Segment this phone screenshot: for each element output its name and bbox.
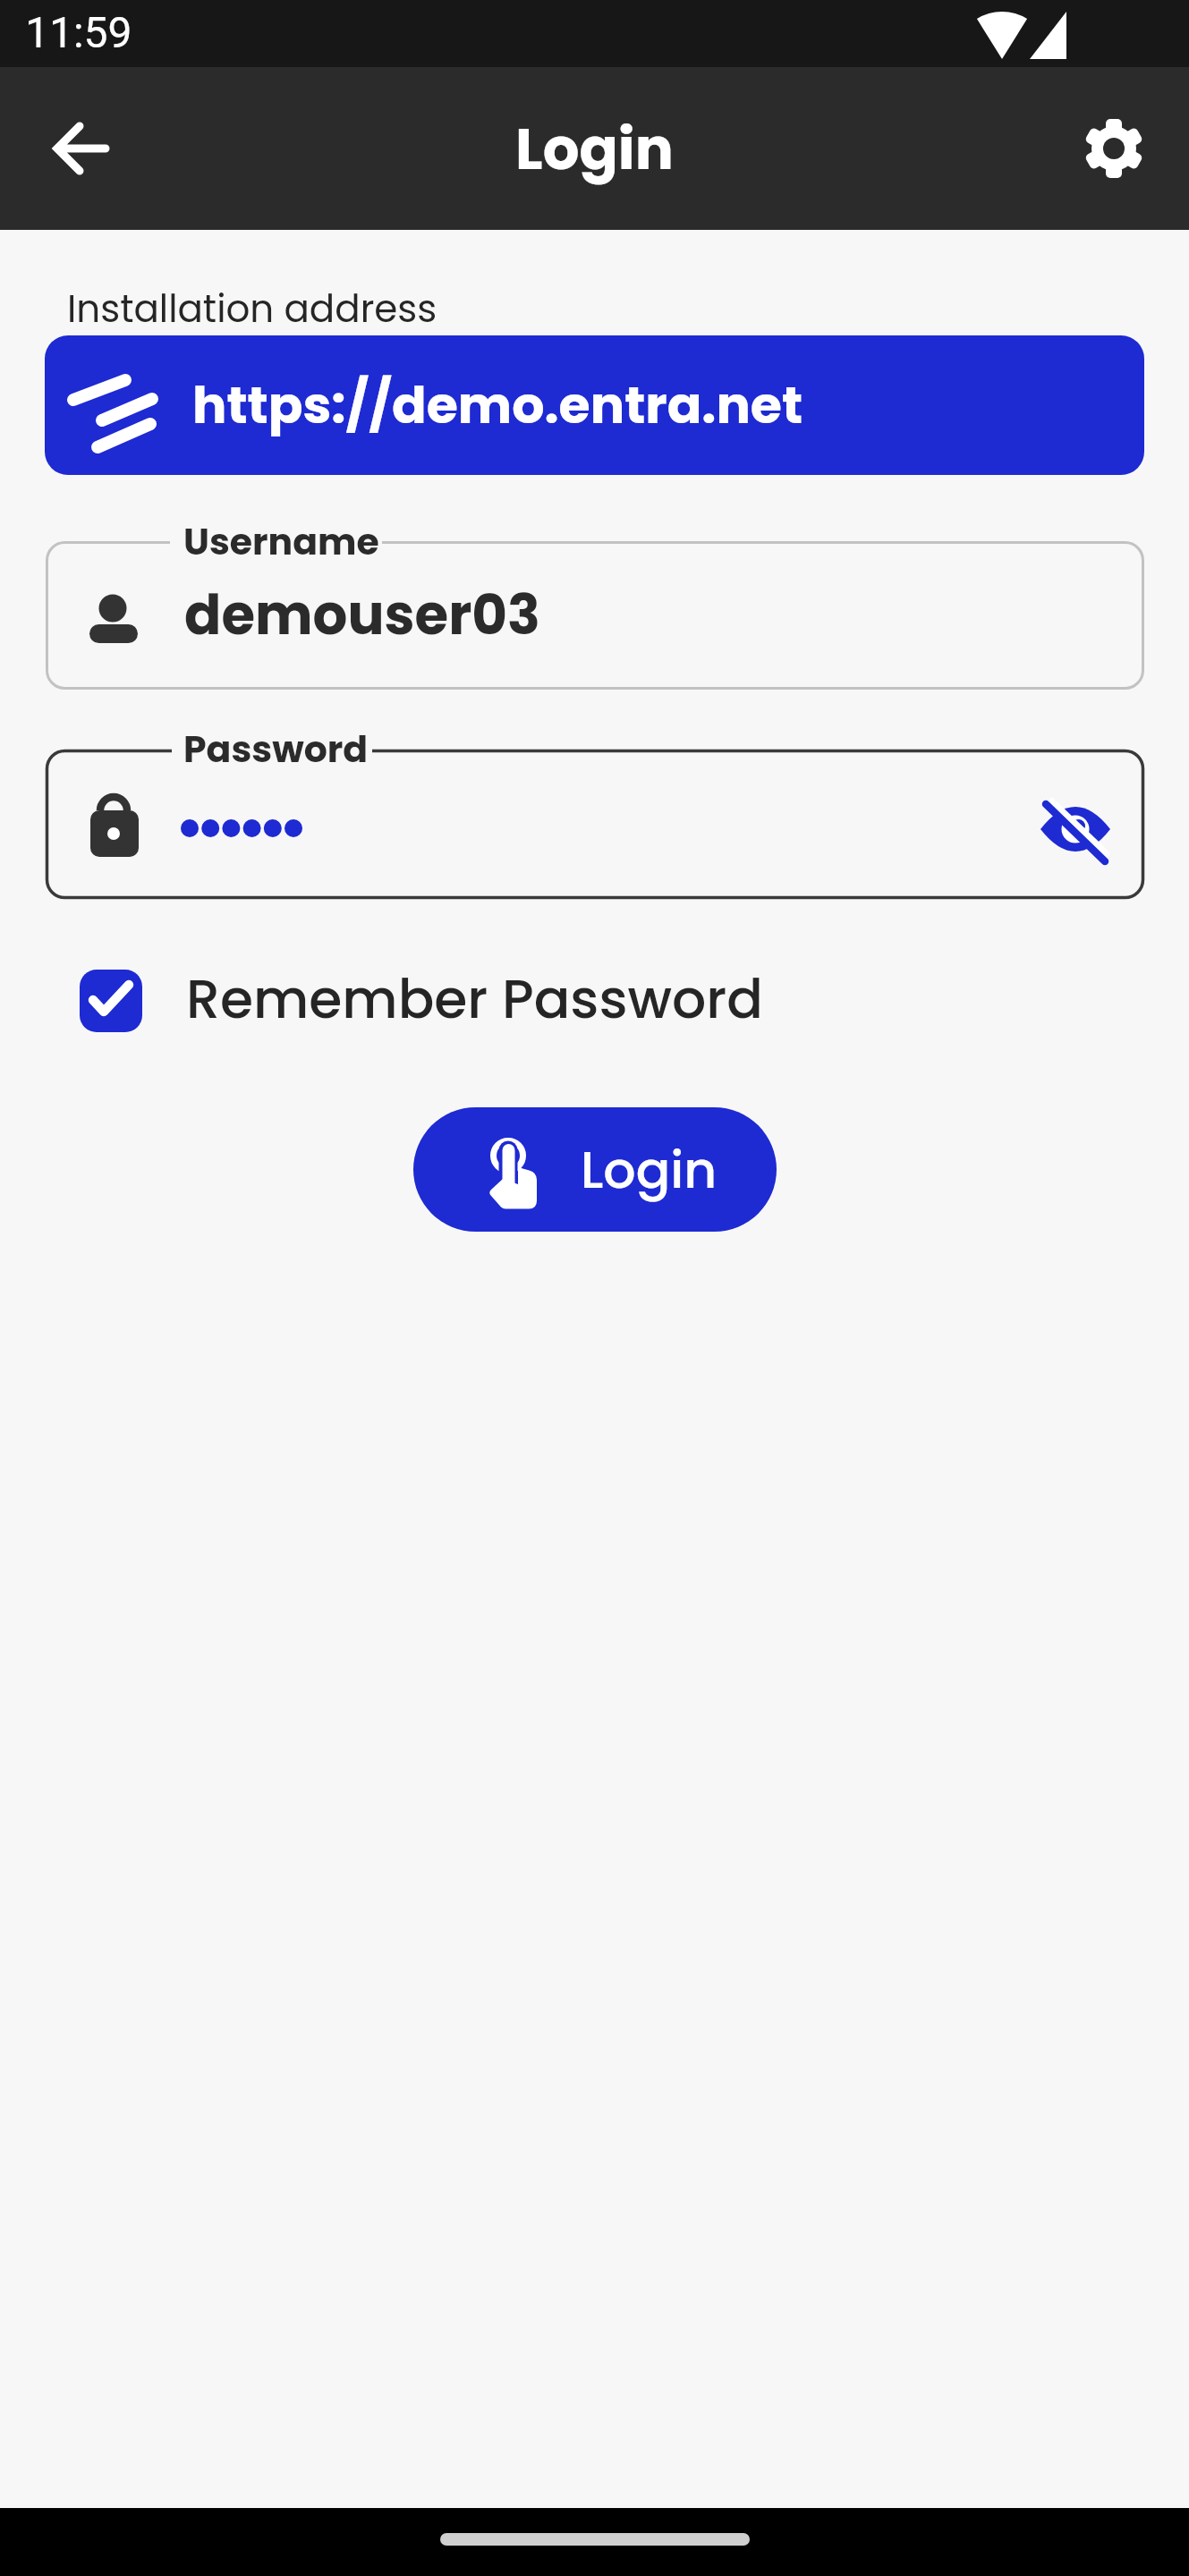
staticText: Password	[183, 724, 369, 775]
staticText: Installation address	[67, 283, 437, 335]
button[interactable]	[1028, 781, 1135, 888]
staticText: https://demo.entra.net	[192, 369, 803, 441]
staticText: Login	[581, 1134, 718, 1206]
staticText: Login	[0, 109, 1189, 190]
staticText: Username	[183, 516, 379, 567]
button[interactable]	[28, 95, 135, 202]
button[interactable]: Login	[413, 1107, 777, 1232]
staticText: Remember Password	[186, 962, 763, 1037]
button[interactable]	[46, 750, 1144, 899]
button[interactable]: https://demo.entra.net	[45, 335, 1144, 475]
button[interactable]	[1060, 95, 1168, 202]
button[interactable]: demouser03	[46, 541, 1144, 690]
button[interactable]: Remember Password	[54, 939, 769, 1046]
staticText: 11:59	[25, 7, 132, 57]
staticText: demouser03	[184, 577, 540, 653]
